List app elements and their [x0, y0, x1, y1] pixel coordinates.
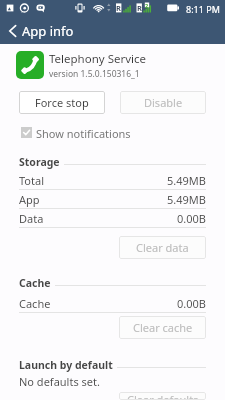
staticText: 0.00B [177, 296, 206, 311]
staticText: No defaults set. [19, 374, 100, 389]
button[interactable]: Disable [120, 91, 206, 114]
staticText: 0.00B [177, 211, 206, 226]
staticText: Launch by default [19, 358, 113, 372]
staticText: Clear data [136, 240, 189, 255]
staticText: R [137, 3, 142, 13]
staticText: Show notifications [36, 126, 131, 138]
button[interactable]: Clear cache [119, 316, 206, 339]
staticText: 5.49MB [167, 192, 206, 207]
staticText: App info [22, 22, 74, 40]
staticText: version 1.5.0.150316_1 [49, 68, 140, 79]
staticText: Cache [19, 276, 51, 290]
staticText: Clear cache [133, 320, 193, 335]
staticText: Storage [19, 155, 60, 169]
button[interactable]: Clear data [119, 236, 206, 259]
staticText: 2 [145, 2, 149, 9]
button[interactable]: Back [0, 18, 225, 44]
button[interactable]: Force stop [19, 91, 105, 114]
staticText: 5.49MB [167, 173, 206, 188]
staticText: Total [19, 173, 44, 188]
staticText: Clear defaults [127, 392, 199, 400]
staticText: Data [19, 211, 44, 226]
staticText: Disable [144, 95, 183, 110]
staticText: Telephony Service [49, 51, 146, 67]
staticText: Cache [19, 296, 51, 311]
staticText: Force stop [35, 95, 89, 110]
button[interactable]: Clear defaults [119, 392, 206, 400]
staticText: 8:11 PM [186, 3, 220, 15]
button[interactable]: Show notifications [0, 126, 225, 138]
staticText: App [19, 192, 40, 207]
staticText: R [116, 3, 121, 13]
